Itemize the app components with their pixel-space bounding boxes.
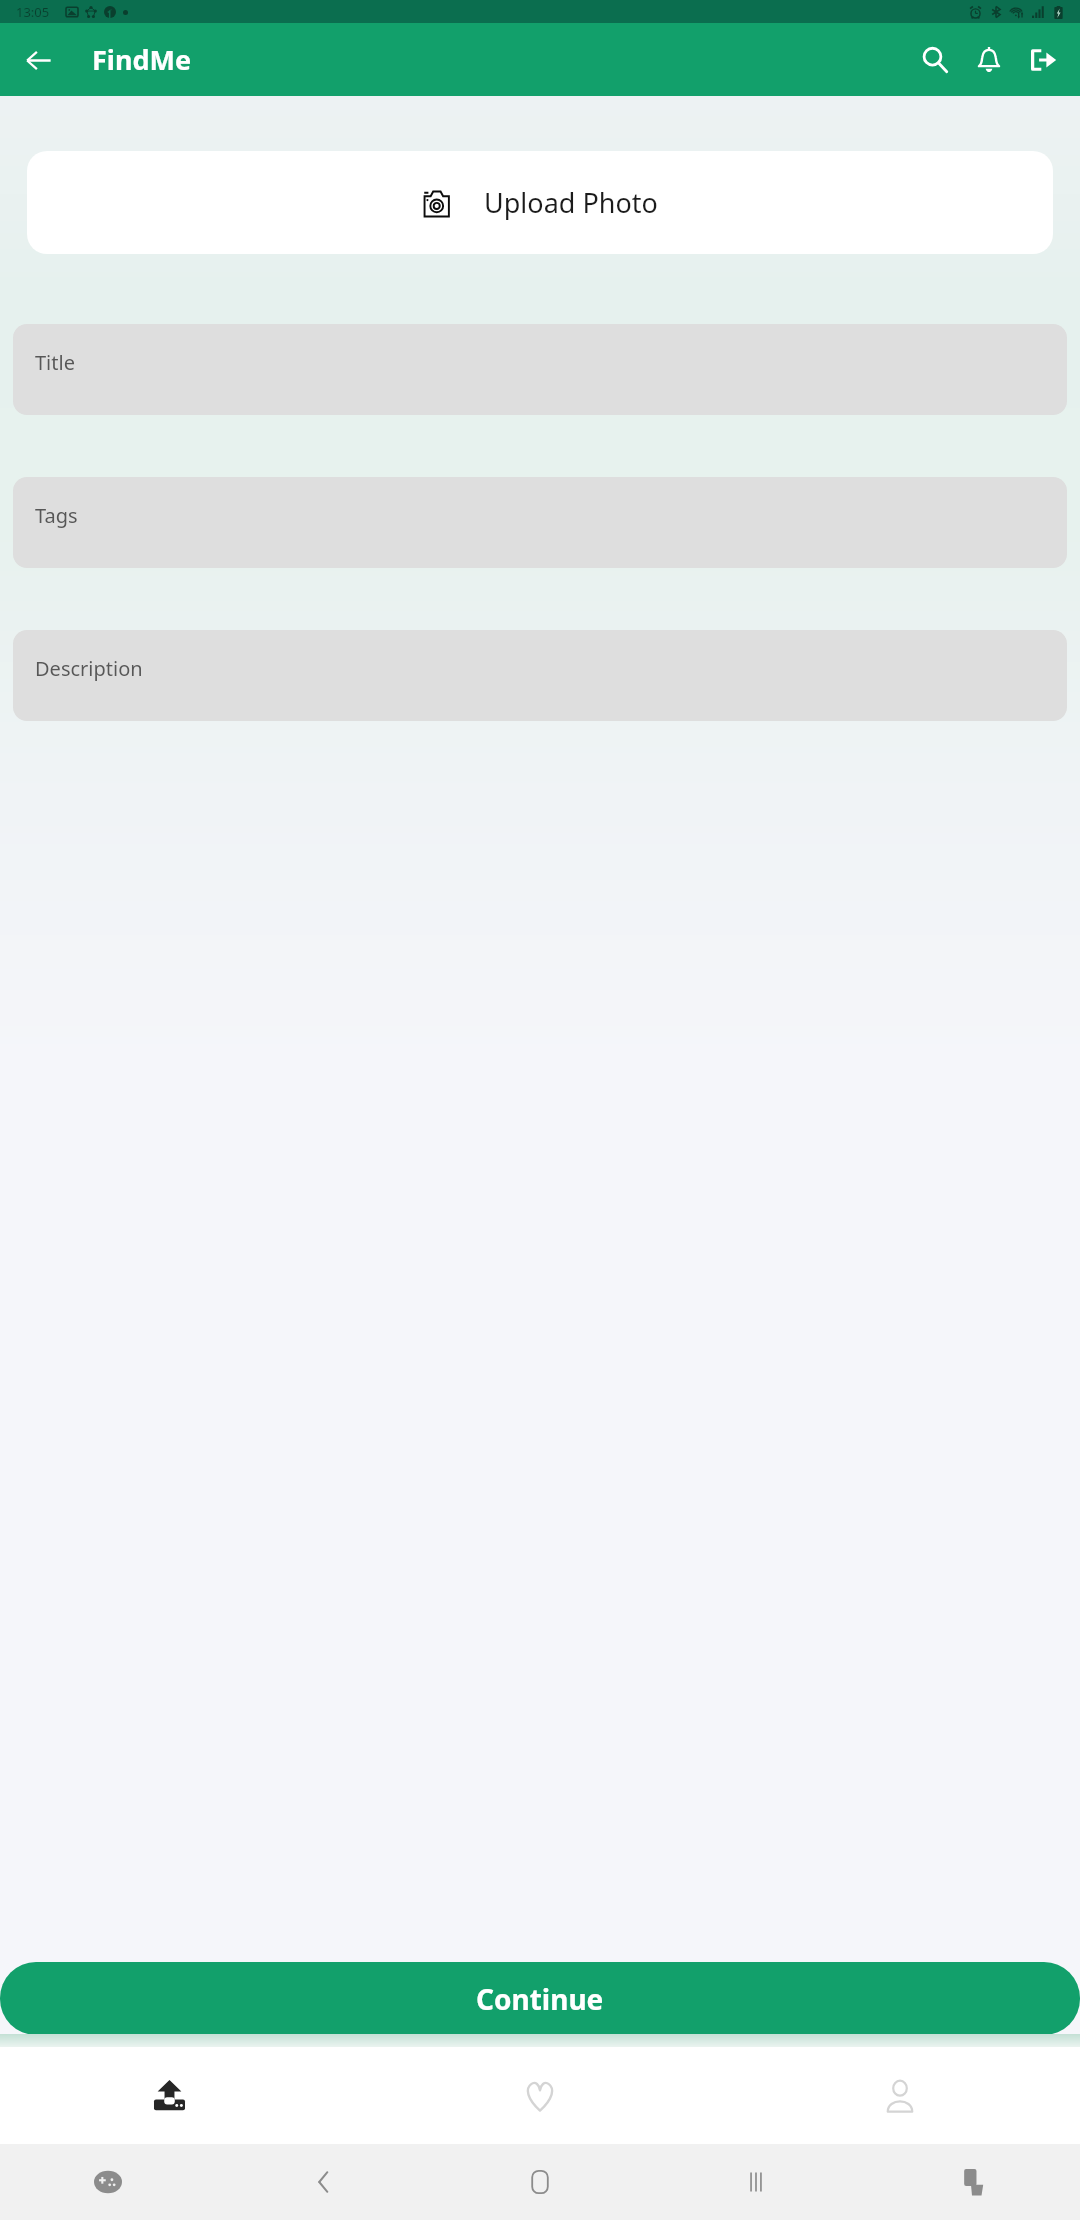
button[interactable]: Back — [216, 2144, 432, 2220]
button[interactable]: Tags — [13, 477, 1067, 568]
button[interactable]: Profile — [720, 2047, 1080, 2144]
button[interactable]: Log out — [1016, 33, 1070, 87]
button[interactable]: Home — [432, 2144, 648, 2220]
button[interactable]: Notifications — [962, 33, 1016, 87]
button[interactable]: Upload Photo — [27, 151, 1053, 254]
staticText: Description — [35, 655, 143, 682]
button[interactable]: Recents — [648, 2144, 864, 2220]
staticText: 13:05 — [16, 3, 50, 21]
button[interactable]: Continue — [0, 1962, 1080, 2035]
staticText: Tags — [35, 502, 78, 529]
button[interactable]: Title — [13, 324, 1067, 415]
button[interactable]: Description — [13, 630, 1067, 721]
staticText: Upload Photo — [484, 184, 658, 221]
button[interactable]: Favorites — [360, 2047, 720, 2144]
button[interactable]: Back — [12, 34, 64, 86]
staticText: Continue — [476, 1980, 604, 2018]
button[interactable]: Search — [908, 33, 962, 87]
button[interactable]: Upload — [0, 2047, 360, 2144]
staticText: Title — [35, 349, 75, 376]
staticText: FindMe — [92, 41, 192, 78]
